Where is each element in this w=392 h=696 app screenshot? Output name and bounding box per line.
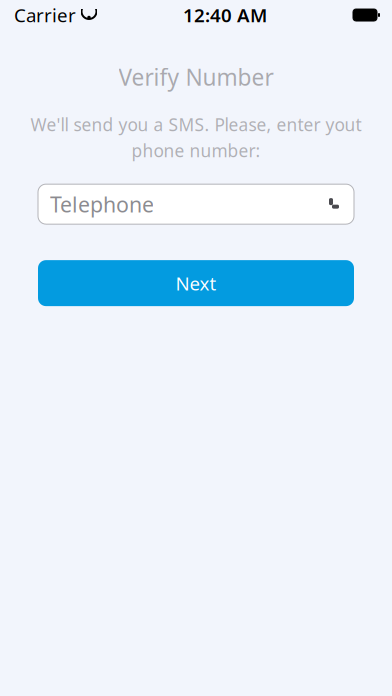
staticText: We'll send you a SMS. Please, enter yout bbox=[30, 113, 361, 136]
staticText: Telephone bbox=[50, 190, 154, 218]
staticText: 12:40 AM bbox=[183, 3, 267, 27]
button[interactable]: Next bbox=[38, 260, 354, 306]
staticText: Next bbox=[175, 271, 216, 295]
staticText: Verify Number bbox=[118, 62, 273, 92]
button[interactable]: Telephone bbox=[38, 184, 354, 224]
staticText: phone number: bbox=[131, 139, 260, 162]
staticText: Carrier bbox=[14, 3, 76, 27]
